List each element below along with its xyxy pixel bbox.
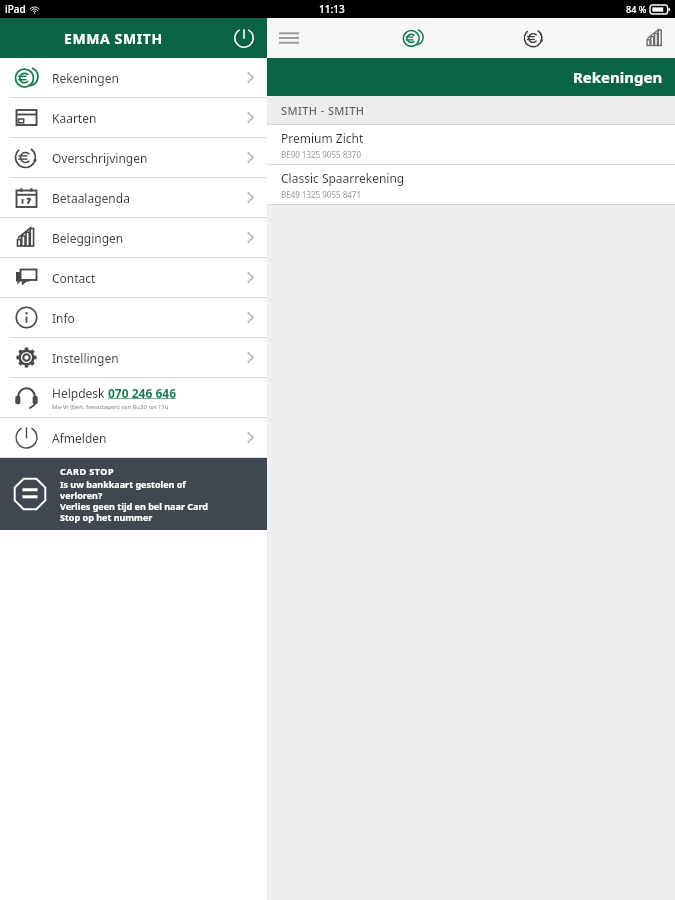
staticText: Is uw bankkaart gestolen of verloren? Ve…: [60, 478, 208, 523]
staticText: 84 %: [626, 3, 647, 15]
staticText: Afmelden: [52, 430, 107, 446]
staticText: Rekeningen: [52, 70, 119, 86]
staticText: Ma-Vr (beh. feestdagen) van 8u30 tot 17u: [52, 403, 169, 411]
staticText: EMMA SMITH: [64, 29, 163, 48]
staticText: Kaarten: [52, 110, 97, 126]
button[interactable]: Power: [227, 21, 261, 55]
staticText: SMITH - SMITH: [281, 103, 365, 118]
button[interactable]: Contact: [0, 258, 267, 297]
staticText: Contact: [52, 270, 96, 286]
button[interactable]: Info: [0, 298, 267, 337]
button[interactable]: EMMA SMITH: [0, 18, 267, 58]
button[interactable]: Investments: [635, 18, 675, 58]
button[interactable]: Instellingen: [0, 338, 267, 377]
button[interactable]: Transfers: [514, 18, 554, 58]
button[interactable]: Accounts: [393, 18, 433, 58]
button[interactable]: Afmelden: [0, 418, 267, 457]
staticText: 070 246 646: [108, 385, 177, 401]
staticText: BE49 1325 9055 8471: [281, 189, 361, 200]
button[interactable]: Betaalagenda: [0, 178, 267, 217]
staticText: Classic Spaarrekening: [281, 170, 405, 186]
staticText: Helpdesk: [52, 385, 108, 401]
staticText: 11:13: [319, 2, 345, 16]
staticText: Premium Zicht: [281, 130, 364, 146]
staticText: Instellingen: [52, 350, 119, 366]
staticText: Beleggingen: [52, 230, 124, 246]
button[interactable]: Overschrijvingen: [0, 138, 267, 177]
staticText: Info: [52, 310, 75, 326]
staticText: BE90 1325 9055 8370: [281, 149, 361, 160]
button[interactable]: Premium Zicht: [267, 125, 675, 164]
button[interactable]: Classic Spaarrekening: [267, 165, 675, 204]
staticText: Overschrijvingen: [52, 150, 148, 166]
staticText: Betaalagenda: [52, 190, 130, 206]
button[interactable]: CARD STOP: [0, 458, 267, 530]
staticText: iPad: [5, 2, 26, 16]
button[interactable]: Kaarten: [0, 98, 267, 137]
button[interactable]: Rekeningen: [0, 58, 267, 97]
button[interactable]: Beleggingen: [0, 218, 267, 257]
staticText: CARD STOP: [60, 465, 115, 477]
staticText: Rekeningen: [573, 67, 663, 87]
button[interactable]: Helpdesk: [0, 378, 267, 417]
button[interactable]: Menu: [267, 18, 311, 58]
